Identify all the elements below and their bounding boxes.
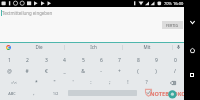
staticText: NOTEBOOKCHECK bbox=[150, 90, 200, 98]
staticText: " bbox=[53, 79, 56, 86]
staticText: =\< bbox=[11, 80, 17, 85]
staticText: + bbox=[118, 68, 121, 75]
button[interactable]: Ich bbox=[64, 43, 122, 51]
button[interactable]: Backspace bbox=[156, 77, 190, 88]
button[interactable]: Recent apps bbox=[184, 67, 200, 83]
button[interactable]: ABC bbox=[0, 88, 23, 99]
button[interactable]: 4 bbox=[55, 55, 73, 66]
button[interactable]: " bbox=[45, 77, 63, 88]
staticText: Ich bbox=[90, 44, 97, 50]
button[interactable]: @ bbox=[0, 66, 18, 77]
button[interactable]: FERTIG bbox=[162, 21, 183, 29]
staticText: Die bbox=[35, 44, 43, 50]
button[interactable]: , bbox=[23, 88, 45, 99]
staticText: ! bbox=[127, 79, 129, 86]
staticText: 9 bbox=[155, 57, 158, 64]
staticText: # bbox=[25, 68, 29, 75]
staticText: 2 bbox=[26, 57, 29, 64]
staticText: @ bbox=[7, 68, 12, 75]
staticText: 16:00 bbox=[173, 1, 184, 6]
button[interactable]: ( bbox=[129, 66, 147, 77]
button[interactable]: ; bbox=[101, 77, 119, 88]
staticText: . bbox=[146, 90, 148, 97]
button[interactable]: € bbox=[37, 66, 55, 77]
button[interactable]: 8 bbox=[129, 55, 147, 66]
button[interactable]: 6 bbox=[92, 55, 110, 66]
button[interactable]: 2 bbox=[18, 55, 36, 66]
staticText: * bbox=[35, 79, 38, 86]
button[interactable]: Google bbox=[2, 43, 15, 51]
button[interactable]: ? bbox=[137, 77, 155, 88]
button[interactable]: 0 bbox=[166, 55, 184, 66]
button[interactable]: 7 bbox=[110, 55, 128, 66]
staticText: 6 bbox=[100, 57, 103, 64]
button[interactable]: _ bbox=[55, 66, 73, 77]
staticText: - bbox=[100, 68, 102, 75]
button[interactable]: & bbox=[74, 66, 92, 77]
staticText: Textmitteilung eingeben bbox=[2, 10, 53, 16]
staticText: , bbox=[33, 90, 35, 97]
button[interactable]: + bbox=[110, 66, 128, 77]
button[interactable]: . bbox=[137, 88, 156, 99]
staticText: 0 bbox=[174, 57, 177, 64]
button[interactable]: Switch keyboard bbox=[45, 88, 67, 99]
staticText: ( bbox=[137, 68, 139, 75]
staticText: € bbox=[45, 68, 48, 75]
button[interactable]: 5 bbox=[74, 55, 92, 66]
staticText: 3 bbox=[45, 57, 48, 64]
button[interactable]: Voice input bbox=[172, 43, 184, 51]
staticText: 1 bbox=[8, 57, 11, 64]
staticText: ) bbox=[155, 68, 157, 75]
staticText: ? bbox=[145, 79, 148, 86]
button[interactable]: ! bbox=[119, 77, 137, 88]
button[interactable]: Enter bbox=[156, 88, 190, 99]
staticText: / bbox=[174, 68, 176, 75]
staticText: FERTIG bbox=[166, 23, 179, 28]
staticText: 1/2 bbox=[53, 91, 59, 96]
button[interactable]: Back bbox=[184, 14, 200, 30]
button[interactable]: - bbox=[92, 66, 110, 77]
button[interactable]: * bbox=[27, 77, 45, 88]
button[interactable]: # bbox=[18, 66, 36, 77]
staticText: 5 bbox=[82, 57, 85, 64]
staticText: 8 bbox=[137, 57, 140, 64]
button[interactable]: : bbox=[82, 77, 100, 88]
button[interactable]: Mit bbox=[122, 43, 172, 51]
button[interactable]: 9 bbox=[147, 55, 165, 66]
button[interactable]: Die bbox=[13, 43, 64, 51]
staticText: _ bbox=[63, 68, 66, 75]
button[interactable]: 3 bbox=[37, 55, 55, 66]
staticText: & bbox=[81, 68, 85, 75]
staticText: 4 bbox=[63, 57, 66, 64]
staticText: 7 bbox=[118, 57, 121, 64]
staticText: ; bbox=[109, 79, 111, 86]
staticText: Mit bbox=[143, 44, 151, 50]
staticText: : bbox=[90, 79, 92, 86]
button[interactable]: 1 bbox=[0, 55, 18, 66]
button[interactable]: =\< bbox=[0, 77, 27, 88]
button[interactable]: Home bbox=[184, 42, 200, 58]
button[interactable]: ) bbox=[147, 66, 165, 77]
staticText: ' bbox=[72, 79, 74, 86]
button[interactable]: / bbox=[166, 66, 184, 77]
staticText: ABC bbox=[8, 91, 16, 96]
staticText: 70% bbox=[164, 1, 172, 6]
